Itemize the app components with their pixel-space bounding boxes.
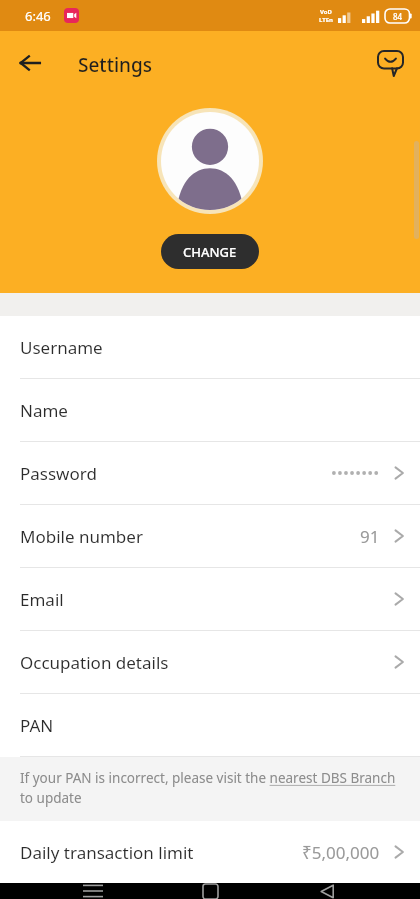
staticText: CHANGE [183, 243, 237, 261]
button[interactable]: Daily transaction limit [0, 821, 420, 883]
staticText: Name [20, 399, 68, 422]
button[interactable]: PAN [0, 694, 420, 756]
button[interactable]: Username [0, 316, 420, 378]
staticText: If your PAN is incorrect, please visit t… [20, 769, 400, 807]
button[interactable]: Back [303, 883, 351, 899]
staticText: Settings [78, 52, 152, 78]
staticText: PAN [20, 714, 54, 737]
staticText: Username [20, 336, 103, 359]
staticText: Mobile number [20, 525, 143, 548]
button[interactable]: Profile photo [161, 112, 259, 210]
staticText: 91 [360, 525, 380, 548]
button[interactable]: Mobile number [0, 505, 420, 567]
staticText: Daily transaction limit [20, 841, 194, 864]
button[interactable]: Home [186, 883, 234, 899]
button[interactable]: Recents [69, 883, 117, 899]
staticText: Occupation details [20, 651, 169, 674]
button[interactable]: Password [0, 442, 420, 504]
staticText: VoD [320, 8, 332, 16]
button[interactable]: Back [10, 43, 50, 83]
button[interactable]: Occupation details [0, 631, 420, 693]
staticText: Password [20, 462, 97, 485]
button[interactable]: Name [0, 379, 420, 441]
button[interactable]: Chat support [370, 43, 410, 83]
button[interactable]: CHANGE [161, 234, 259, 269]
button[interactable]: Email [0, 568, 420, 630]
staticText: LTEn [319, 16, 333, 24]
staticText: 84 [393, 11, 403, 22]
staticText: 6:46 [25, 7, 51, 25]
staticText: Email [20, 588, 64, 611]
staticText: ₹5,00,000 [302, 841, 380, 864]
